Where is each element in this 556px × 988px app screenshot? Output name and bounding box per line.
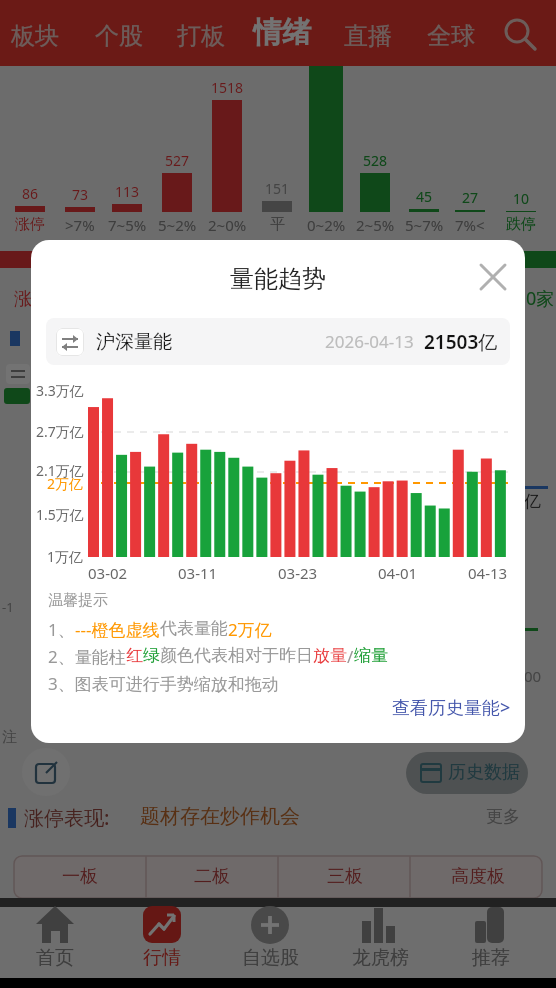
staticText: 04-01 [378,563,418,583]
staticText: 2~0% [208,215,247,235]
staticText: 温馨提示 [48,591,108,610]
staticText: 45 [416,187,433,206]
staticText: 03-23 [278,563,318,583]
staticText: 5~2% [158,215,197,235]
button[interactable] [412,856,544,898]
staticText: -1 [2,598,14,616]
button[interactable] [166,0,246,66]
staticText: 00 [524,666,542,686]
staticText: 1518 [211,78,244,97]
staticText: 板块 [11,21,59,51]
staticText: 1、 [48,618,75,641]
button[interactable] [146,856,278,898]
button[interactable] [249,0,329,66]
staticText: 1.5万亿 [36,505,84,524]
staticText: 查看历史量能> [392,695,511,720]
staticText: 直播 [344,21,392,51]
staticText: 放量 [313,645,347,666]
staticText: 7~5% [108,215,147,235]
button[interactable] [215,902,325,978]
staticText: 3、图表可进行手势缩放和拖动 [48,672,279,695]
button[interactable] [332,0,412,66]
staticText: 跌停 [506,215,536,234]
staticText: 2026-04-13 [325,330,414,353]
staticText: 全球 [427,21,475,51]
button[interactable] [107,902,217,978]
staticText: ---橙色虚线 [75,618,160,641]
staticText: 绿 [143,645,160,666]
staticText: 打板 [177,21,225,51]
staticText: 历史数据 [448,761,520,784]
button[interactable]: 更多 [486,806,536,832]
staticText: 涨停 86家 [14,286,94,311]
staticText: 527 [165,151,190,170]
staticText: 龙虎榜 [352,946,409,970]
staticText: 2、量能柱 [48,645,126,668]
staticText: 涨停表现: [24,804,110,831]
staticText: 注 [2,728,17,747]
staticText: 个股 [95,21,143,51]
staticText: 7%< [455,215,485,235]
button[interactable] [14,856,146,898]
staticText: 1万亿 [47,547,84,566]
button[interactable]: 查看历史量能> [361,695,511,729]
staticText: 151 [265,179,290,198]
staticText: 03-11 [178,563,218,583]
button[interactable] [279,856,411,898]
staticText: 21503亿 [424,329,498,355]
staticText: 27 [462,188,479,207]
staticText: 更多 [486,806,520,827]
staticText: 涨停 [15,215,45,234]
staticText: 代表量能 [160,618,228,639]
staticText: 量能趋势 [230,264,326,294]
staticText: 04-13 [468,563,508,583]
staticText: 缩量 [354,645,388,666]
staticText: 三板 [327,865,363,888]
staticText: 2~5% [356,215,395,235]
button[interactable] [83,0,163,66]
staticText: 情绪 [253,14,311,51]
button[interactable] [0,0,80,66]
button[interactable]: 沪深量能 [46,318,510,365]
staticText: 沪深量能 [96,330,172,354]
staticText: 题材存在炒作机会 [140,804,300,829]
staticText: 03-02 [88,563,128,583]
staticText: >7% [65,215,95,235]
staticText: 颜色代表相对于昨日 [160,645,313,666]
staticText: 528 [363,151,388,170]
button[interactable] [471,255,515,299]
staticText: 首页 [36,946,74,970]
staticText: 113 [115,182,140,201]
staticText: 平 [270,215,285,234]
button[interactable] [0,0,556,988]
staticText: 红 [126,645,143,666]
staticText: 2.1万亿 [36,461,84,480]
staticText: 2万亿 [47,474,84,493]
staticText: / [347,645,354,668]
staticText: 二板 [194,865,230,888]
staticText: 0~2% [307,215,346,235]
staticText: 73 [72,185,89,204]
staticText: 2.7万亿 [36,422,84,441]
button[interactable] [436,902,546,978]
staticText: 高度板 [451,865,505,888]
staticText: 10 [513,189,530,208]
button[interactable] [325,902,435,978]
button[interactable] [415,0,495,66]
staticText: 86 [22,184,39,203]
staticText: 跌停 10家 [475,286,555,311]
button[interactable] [406,752,528,794]
staticText: 2万亿 [228,618,272,641]
staticText: 5~7% [405,215,444,235]
staticText: 行情 [143,946,181,970]
staticText: 推荐 [472,946,510,970]
button[interactable] [0,902,110,978]
button[interactable] [22,748,70,796]
staticText: 3.3万亿 [36,381,84,400]
button[interactable] [500,14,544,54]
staticText: 自选股 [242,946,299,970]
staticText: 亿 [524,491,541,512]
staticText: 一板 [62,865,98,888]
